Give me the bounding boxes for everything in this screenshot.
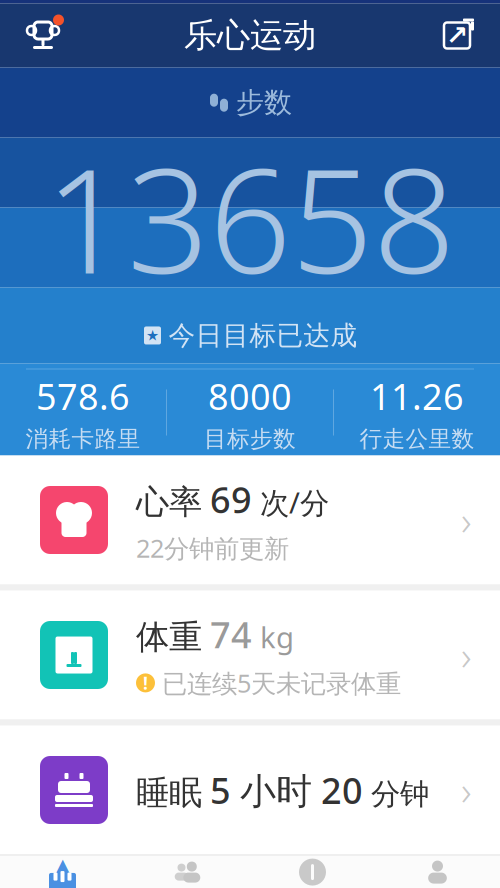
staticText: 分钟	[371, 776, 429, 812]
staticText: 13658	[45, 122, 455, 313]
button[interactable]: 我的	[375, 855, 500, 888]
staticText: ▲	[55, 854, 70, 877]
staticText: 心率	[136, 482, 202, 522]
staticText: 5 小时 20	[210, 766, 363, 814]
staticText: 69	[210, 475, 252, 523]
staticText: ›	[461, 493, 472, 546]
staticText: kg	[260, 617, 294, 656]
button[interactable]: 睡眠	[0, 725, 500, 854]
staticText: 目标步数	[204, 425, 296, 453]
button[interactable]: 体重	[0, 590, 500, 719]
staticText: 578.6	[36, 372, 130, 420]
staticText: 今日目标已达成	[168, 319, 357, 352]
button[interactable]: 心率	[0, 455, 500, 584]
staticText: ★	[146, 327, 159, 344]
staticText: 次/分	[260, 483, 329, 522]
staticText: ↗	[446, 20, 468, 51]
button[interactable]: 发现	[250, 855, 375, 888]
button[interactable]: ▲	[0, 855, 125, 888]
staticText: 8000	[208, 372, 292, 420]
staticText: 22分钟前更新	[136, 531, 289, 565]
button[interactable]: 群组	[125, 855, 250, 888]
staticText: !	[143, 671, 148, 694]
staticText: 睡眠	[136, 772, 202, 813]
button[interactable]: 分享	[432, 10, 482, 60]
staticText: 行走公里数	[359, 425, 474, 453]
staticText: 11.26	[370, 372, 464, 420]
staticText: 74	[210, 610, 252, 658]
staticText: ›	[461, 628, 472, 681]
button[interactable]: 成就	[18, 10, 68, 60]
staticText: 步数	[236, 85, 292, 120]
staticText: ›	[461, 763, 472, 816]
staticText: 乐心运动	[184, 15, 316, 56]
staticText: 已连续5天未记录体重	[162, 666, 401, 700]
staticText: 消耗卡路里	[25, 425, 140, 453]
staticText: 体重	[136, 617, 202, 657]
